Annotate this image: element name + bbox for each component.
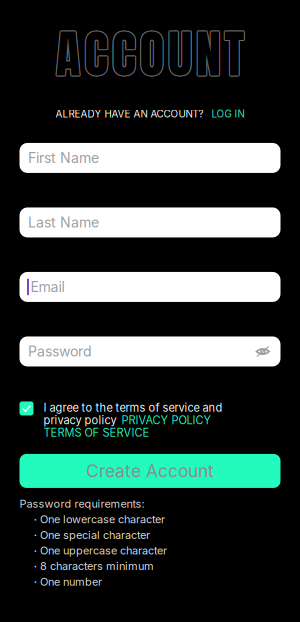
staticText: One number <box>40 575 102 588</box>
staticText: Password <box>28 343 92 360</box>
staticText: Create Account <box>86 460 214 481</box>
staticText: ACCOUNT <box>55 17 243 93</box>
staticText: ACCOUNT <box>57 16 245 92</box>
staticText: ACCOUNT <box>56 15 245 91</box>
staticText: Password requirements: <box>19 497 144 510</box>
staticText: Email <box>30 278 64 295</box>
staticText: One special character <box>40 528 150 541</box>
button[interactable]: PRIVACY POLICY <box>121 413 211 427</box>
staticText: · <box>33 574 37 589</box>
button[interactable]: Password <box>19 336 280 366</box>
staticText: PRIVACY POLICY <box>121 413 211 427</box>
staticText: ACCOUNT <box>55 15 243 91</box>
button[interactable]: Email <box>19 272 280 302</box>
staticText: privacy policy <box>43 413 116 427</box>
staticText: ALREADY HAVE AN ACCOUNT? <box>55 108 203 120</box>
staticText: Last Name <box>28 214 99 231</box>
staticText: One uppercase character <box>40 544 167 557</box>
staticText: ACCOUNT <box>56 17 244 93</box>
staticText: First Name <box>28 149 99 166</box>
staticText: 8 characters minimum <box>40 559 154 573</box>
button[interactable]: First Name <box>19 143 280 173</box>
staticText: · <box>33 543 37 558</box>
staticText: I agree to the terms of service and <box>43 401 222 414</box>
button[interactable]: LOG IN <box>211 108 244 120</box>
staticText: · <box>33 512 37 527</box>
staticText: ACCOUNT <box>56 15 244 91</box>
button[interactable]: Last Name <box>19 207 280 237</box>
staticText: TERMS OF SERVICE <box>43 426 149 439</box>
staticText: LOG IN <box>211 108 244 120</box>
staticText: · <box>33 558 37 574</box>
button[interactable]: TERMS OF SERVICE <box>43 426 149 439</box>
button[interactable]: Agree to the terms of service <box>19 401 33 415</box>
staticText: ACCOUNT <box>56 17 245 93</box>
button[interactable]: Create Account <box>19 454 280 488</box>
staticText: ACCOUNT <box>56 16 244 92</box>
staticText: · <box>33 527 37 543</box>
staticText: ACCOUNT <box>55 16 243 92</box>
staticText: One lowercase character <box>40 513 165 526</box>
